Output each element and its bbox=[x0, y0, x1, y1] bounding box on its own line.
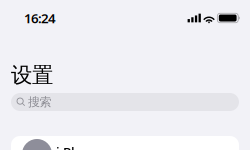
staticText: 设置 bbox=[11, 62, 53, 88]
staticText: 16:24 bbox=[24, 9, 56, 27]
button[interactable]: 搜索 bbox=[11, 93, 239, 111]
staticText: 搜索 bbox=[28, 95, 52, 109]
staticText: i Ph bbox=[56, 143, 79, 150]
button[interactable]: i Ph bbox=[11, 136, 239, 150]
